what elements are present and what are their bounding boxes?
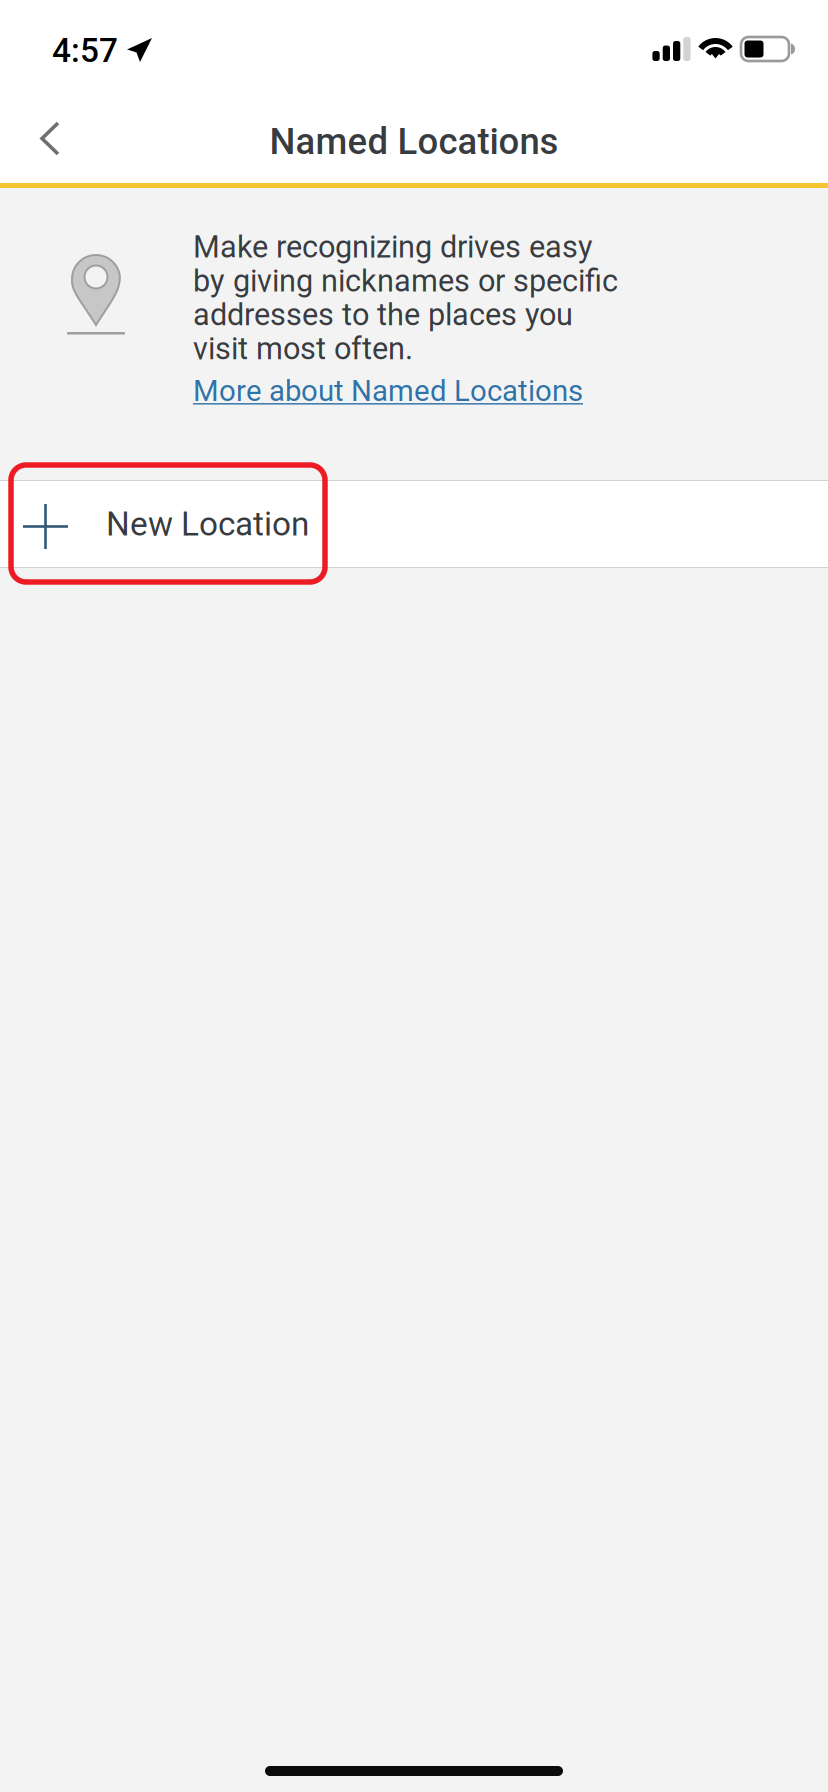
button[interactable]: Back bbox=[0, 96, 92, 181]
button[interactable]: New Location bbox=[0, 480, 828, 568]
staticText: 4:57 bbox=[52, 31, 118, 70]
staticText: New Location bbox=[106, 504, 309, 544]
staticText: Named Locations bbox=[269, 120, 558, 163]
button[interactable]: More about Named Locations bbox=[193, 367, 625, 408]
staticText: Make recognizing drives easy by giving n… bbox=[193, 229, 618, 367]
staticText: More about Named Locations bbox=[193, 374, 583, 408]
